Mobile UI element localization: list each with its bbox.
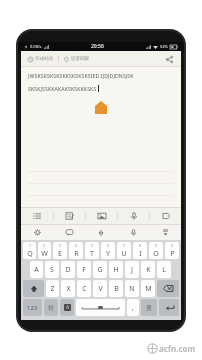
button[interactable]: , <box>127 299 139 316</box>
button[interactable]: V <box>93 280 107 297</box>
staticText: P <box>170 249 175 259</box>
staticText: 0 <box>171 243 174 248</box>
staticText: 2 <box>43 243 46 248</box>
button[interactable]: Share <box>163 53 175 65</box>
staticText: K <box>146 265 151 275</box>
button[interactable]: C <box>77 280 91 297</box>
button[interactable]: 符 <box>44 299 58 316</box>
staticText: H <box>113 265 119 275</box>
button[interactable]: J <box>125 261 139 278</box>
button[interactable]: Voice <box>118 208 149 224</box>
button[interactable]: M <box>141 280 155 297</box>
staticText: 景 <box>146 304 152 312</box>
button[interactable]: List <box>21 208 53 224</box>
staticText: 9 <box>155 243 158 248</box>
button[interactable]: 4 <box>69 242 83 259</box>
staticText: B <box>114 284 119 294</box>
button[interactable]: 6 <box>101 242 115 259</box>
staticText: 符 <box>48 304 54 312</box>
button[interactable]: A <box>30 261 43 278</box>
staticText: 123 <box>27 304 38 312</box>
button[interactable]: B <box>109 280 123 297</box>
button[interactable]: Tag <box>150 208 181 224</box>
button[interactable]: Hide keyboard <box>149 225 181 240</box>
staticText: T <box>90 249 94 259</box>
staticText: 完成时间 <box>35 56 53 62</box>
staticText: J <box>131 265 133 275</box>
staticText: 52% <box>160 44 168 49</box>
staticText: A <box>34 265 39 275</box>
staticText: F <box>82 265 86 275</box>
staticText: SKSKJSSKKAKAKSKSKKKSKS <box>28 85 97 92</box>
staticText: 设置提醒 <box>71 56 89 62</box>
staticText: acfn.com <box>159 343 196 354</box>
button[interactable]: 5 <box>85 242 99 259</box>
button[interactable]: Checklist <box>54 208 85 224</box>
button[interactable]: 完成时间 <box>27 54 54 64</box>
button[interactable]: S <box>45 261 59 278</box>
button[interactable]: G <box>93 261 107 278</box>
staticText: W <box>41 249 48 259</box>
staticText: I <box>139 249 142 259</box>
button[interactable]: Input mode <box>60 299 74 316</box>
staticText: 7 <box>123 243 126 248</box>
staticText: 4 <box>75 243 78 248</box>
button[interactable]: 123 <box>23 299 42 316</box>
button[interactable]: Settings <box>21 225 53 240</box>
button[interactable]: Cursor <box>85 225 117 240</box>
staticText: 1 <box>29 243 32 248</box>
staticText: N <box>129 284 135 294</box>
button[interactable]: L <box>157 261 171 278</box>
staticText: U <box>121 249 127 259</box>
button[interactable]: 景 <box>141 299 157 316</box>
staticText: R <box>74 249 79 259</box>
button[interactable]: Image <box>86 208 117 224</box>
staticText: G <box>97 265 103 275</box>
staticText: A <box>66 304 70 311</box>
staticText: C <box>82 284 87 294</box>
staticText: 3 <box>59 243 62 248</box>
staticText: L <box>162 265 166 275</box>
staticText: S <box>50 265 54 275</box>
button[interactable]: Backspace <box>157 280 179 297</box>
staticText: 6 <box>107 243 110 248</box>
button[interactable]: Emoji <box>53 225 85 240</box>
button[interactable]: 9 <box>149 242 163 259</box>
staticText: 5 <box>91 243 94 248</box>
staticText: Z <box>50 284 55 294</box>
button[interactable]: 1 <box>23 242 36 259</box>
button[interactable]: N <box>125 280 139 297</box>
staticText: , <box>132 303 134 313</box>
button[interactable]: Z <box>46 280 59 297</box>
staticText: E <box>58 249 62 259</box>
staticText: Q <box>27 249 33 259</box>
staticText: JWSKSKSKSKSKKSKSKSKSIED.IJDJDJDNSJSK <box>28 72 134 79</box>
staticText: M <box>145 284 152 294</box>
button[interactable]: K <box>141 261 155 278</box>
button[interactable]: Voice input <box>117 225 149 240</box>
button[interactable]: Enter <box>159 299 179 316</box>
staticText: 0.0K/s <box>30 44 42 49</box>
button[interactable]: H <box>109 261 123 278</box>
staticText: Y <box>106 249 110 259</box>
button[interactable]: 0 <box>165 242 179 259</box>
button[interactable]: X <box>61 280 75 297</box>
staticText: 8 <box>139 243 142 248</box>
staticText: D <box>65 265 71 275</box>
staticText: O <box>153 249 159 259</box>
staticText: V <box>98 284 103 294</box>
button[interactable] <box>76 299 125 316</box>
button[interactable]: 2 <box>38 242 51 259</box>
staticText: X <box>66 284 71 294</box>
button[interactable] <box>23 280 44 297</box>
staticText: 20:56 <box>91 43 104 50</box>
button[interactable]: 3 <box>53 242 67 259</box>
button[interactable]: 7 <box>117 242 131 259</box>
button[interactable]: 8 <box>133 242 147 259</box>
button[interactable]: D <box>61 261 75 278</box>
button[interactable]: 设置提醒 <box>63 54 90 64</box>
button[interactable]: F <box>77 261 91 278</box>
